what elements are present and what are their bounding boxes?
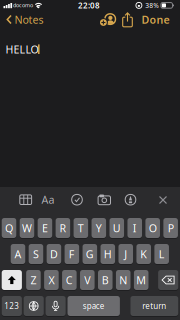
button[interactable]: Dictate bbox=[45, 295, 66, 316]
button[interactable]: O bbox=[145, 217, 160, 238]
staticText: H bbox=[104, 247, 112, 261]
staticText: Q bbox=[5, 221, 13, 235]
button[interactable]: Back bbox=[3, 12, 47, 26]
staticText: J bbox=[124, 247, 127, 261]
button[interactable]: I bbox=[127, 217, 142, 238]
button[interactable]: J bbox=[118, 243, 133, 264]
button[interactable]: Share bbox=[120, 12, 134, 27]
staticText: R bbox=[59, 221, 66, 235]
staticText: N bbox=[119, 273, 127, 287]
staticText: Y bbox=[96, 221, 102, 235]
button[interactable]: H bbox=[100, 243, 115, 264]
button[interactable]: T bbox=[73, 217, 88, 238]
staticText: Done bbox=[141, 12, 169, 27]
button[interactable]: B bbox=[98, 269, 113, 290]
staticText: space bbox=[83, 301, 105, 311]
button[interactable]: X bbox=[44, 269, 59, 290]
staticText: HELLO bbox=[5, 42, 38, 56]
button[interactable]: S bbox=[29, 243, 43, 264]
button[interactable]: Checklist bbox=[71, 194, 83, 206]
button[interactable]: Next Keyboard bbox=[24, 295, 44, 316]
button[interactable]: A bbox=[11, 243, 25, 264]
button[interactable]: Q bbox=[2, 217, 16, 238]
button[interactable]: Table bbox=[19, 194, 32, 206]
staticText: D bbox=[50, 247, 58, 261]
staticText: docomo bbox=[13, 2, 33, 9]
staticText: I bbox=[133, 221, 137, 235]
staticText: E bbox=[42, 221, 48, 235]
staticText: K bbox=[140, 247, 147, 261]
staticText: 38% bbox=[145, 1, 159, 10]
button[interactable]: G bbox=[82, 243, 97, 264]
button[interactable]: R bbox=[56, 217, 70, 238]
staticText: M bbox=[136, 273, 146, 287]
staticText: G bbox=[86, 247, 94, 261]
staticText: return bbox=[142, 301, 166, 311]
button[interactable]: Shift bbox=[2, 269, 22, 290]
staticText: V bbox=[84, 273, 90, 287]
button[interactable]: F bbox=[65, 243, 79, 264]
button[interactable]: V bbox=[80, 269, 95, 290]
button[interactable]: C bbox=[62, 269, 77, 290]
button[interactable]: K bbox=[136, 243, 151, 264]
staticText: W bbox=[22, 221, 32, 235]
button[interactable]: space bbox=[67, 295, 120, 316]
button[interactable]: Done bbox=[141, 12, 169, 26]
staticText: A bbox=[14, 247, 21, 261]
button[interactable]: Dismiss Keyboard bbox=[159, 196, 167, 204]
staticText: U bbox=[113, 221, 121, 235]
button[interactable]: M bbox=[134, 269, 148, 290]
button[interactable]: U bbox=[109, 217, 124, 238]
staticText: 22:08 bbox=[78, 0, 100, 11]
button[interactable]: Camera bbox=[97, 194, 111, 206]
staticText: Notes bbox=[14, 12, 43, 27]
staticText: X bbox=[48, 273, 54, 287]
button[interactable]: W bbox=[20, 217, 34, 238]
button[interactable]: P bbox=[163, 217, 178, 238]
button[interactable]: N bbox=[116, 269, 131, 290]
button[interactable]: Z bbox=[26, 269, 41, 290]
button[interactable]: E bbox=[38, 217, 52, 238]
button[interactable]: return bbox=[130, 295, 178, 316]
button[interactable]: Numbers bbox=[2, 295, 22, 316]
button[interactable]: Format bbox=[39, 194, 57, 206]
staticText: P bbox=[168, 221, 174, 235]
staticText: S bbox=[33, 247, 39, 261]
staticText: Aa bbox=[41, 193, 54, 207]
staticText: O bbox=[149, 221, 157, 235]
staticText: C bbox=[66, 273, 73, 287]
button[interactable]: Add People bbox=[99, 12, 116, 27]
staticText: F bbox=[69, 247, 75, 261]
staticText: 123 bbox=[4, 301, 19, 311]
staticText: B bbox=[102, 273, 109, 287]
button[interactable]: Markup bbox=[124, 194, 136, 206]
staticText: Z bbox=[30, 273, 36, 287]
button[interactable]: D bbox=[47, 243, 61, 264]
staticText: T bbox=[78, 221, 84, 235]
staticText: L bbox=[159, 247, 165, 261]
button[interactable]: L bbox=[154, 243, 169, 264]
button[interactable]: Y bbox=[91, 217, 106, 238]
button[interactable]: Delete bbox=[158, 269, 178, 290]
